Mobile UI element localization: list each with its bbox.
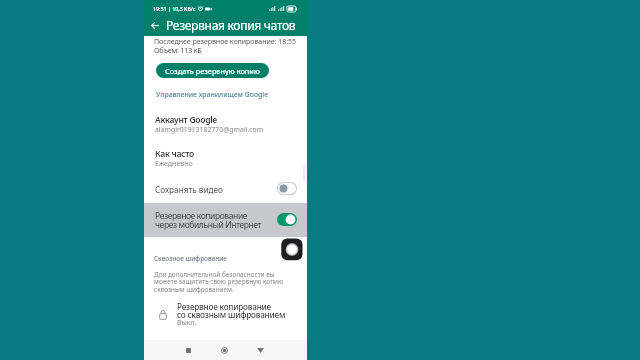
staticText: Аккаунт Google xyxy=(155,114,217,126)
staticText: Выкл. xyxy=(177,318,197,328)
staticText: Резервное копирование xyxy=(177,301,271,312)
staticText: Сквозное шифрование xyxy=(154,254,227,263)
staticText: Объем: 113 кБ xyxy=(154,45,202,55)
button[interactable]: Home xyxy=(214,340,234,360)
staticText: Ежедневно xyxy=(155,159,193,169)
staticText: Для дополнительной безопасности вы может… xyxy=(154,270,286,294)
button[interactable]: Сохранять видео xyxy=(144,179,307,199)
button[interactable]: Резервное копирование xyxy=(144,203,307,237)
staticText: alamgir01913182770@gmail.com xyxy=(155,125,264,134)
staticText: Резервное копирование xyxy=(155,210,248,222)
staticText: со сквозным шифрованием xyxy=(177,309,286,320)
staticText: Последнее резервное копирование: 18:55 xyxy=(154,36,296,46)
button[interactable]: Создать резервную копию xyxy=(156,63,269,78)
staticText: Как часто xyxy=(155,148,194,160)
button[interactable]: Recents xyxy=(178,340,198,360)
button[interactable]: Back xyxy=(144,17,163,36)
button[interactable]: Управление хранилищем Google xyxy=(156,90,269,99)
staticText: Резервная копия чатов xyxy=(166,17,296,33)
button[interactable]: Back xyxy=(250,340,270,360)
button[interactable]: Аккаунт Google xyxy=(144,110,307,134)
staticText: через мобильный Интернет xyxy=(155,219,262,231)
staticText: Сохранять видео xyxy=(155,184,223,195)
button[interactable]: Резервное копирование xyxy=(144,297,307,327)
staticText: 19:31 | 10,3 KБ/c xyxy=(153,5,196,12)
staticText: Управление хранилищем Google xyxy=(156,90,269,99)
button[interactable]: Как часто xyxy=(144,144,307,168)
staticText: Создать резервную копию xyxy=(165,66,260,76)
